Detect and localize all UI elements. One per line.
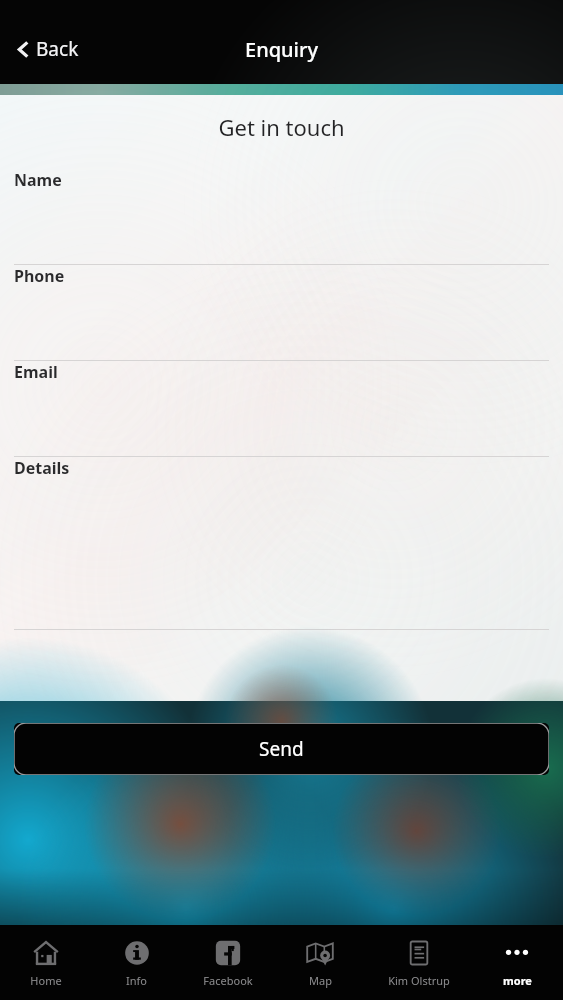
staticText: Home	[30, 973, 62, 988]
button[interactable]: Facebook	[182, 925, 274, 1000]
staticText: Details	[14, 457, 70, 479]
button[interactable]: Kim Olstrup	[366, 925, 471, 1000]
button[interactable]: Name	[0, 169, 563, 265]
button[interactable]: more	[471, 925, 563, 1000]
staticText: Info	[126, 973, 147, 988]
staticText: Phone	[14, 265, 65, 287]
staticText: Back	[36, 36, 79, 62]
staticText: Name	[14, 169, 62, 191]
staticText: more	[503, 973, 532, 988]
staticText: Enquiry	[245, 36, 319, 63]
button[interactable]: Back	[0, 30, 93, 68]
button[interactable]: Send	[14, 723, 549, 775]
staticText: Email	[14, 361, 58, 383]
staticText: Kim Olstrup	[388, 973, 450, 988]
staticText: Map	[309, 973, 332, 988]
staticText: Facebook	[203, 973, 253, 988]
button[interactable]: Phone	[0, 265, 563, 361]
staticText: Get in touch	[0, 112, 563, 142]
button[interactable]: Map	[274, 925, 366, 1000]
staticText: Send	[259, 736, 304, 762]
button[interactable]: Details	[0, 457, 563, 630]
button[interactable]: Info	[91, 925, 182, 1000]
button[interactable]: Home	[0, 925, 91, 1000]
button[interactable]: Email	[0, 361, 563, 457]
